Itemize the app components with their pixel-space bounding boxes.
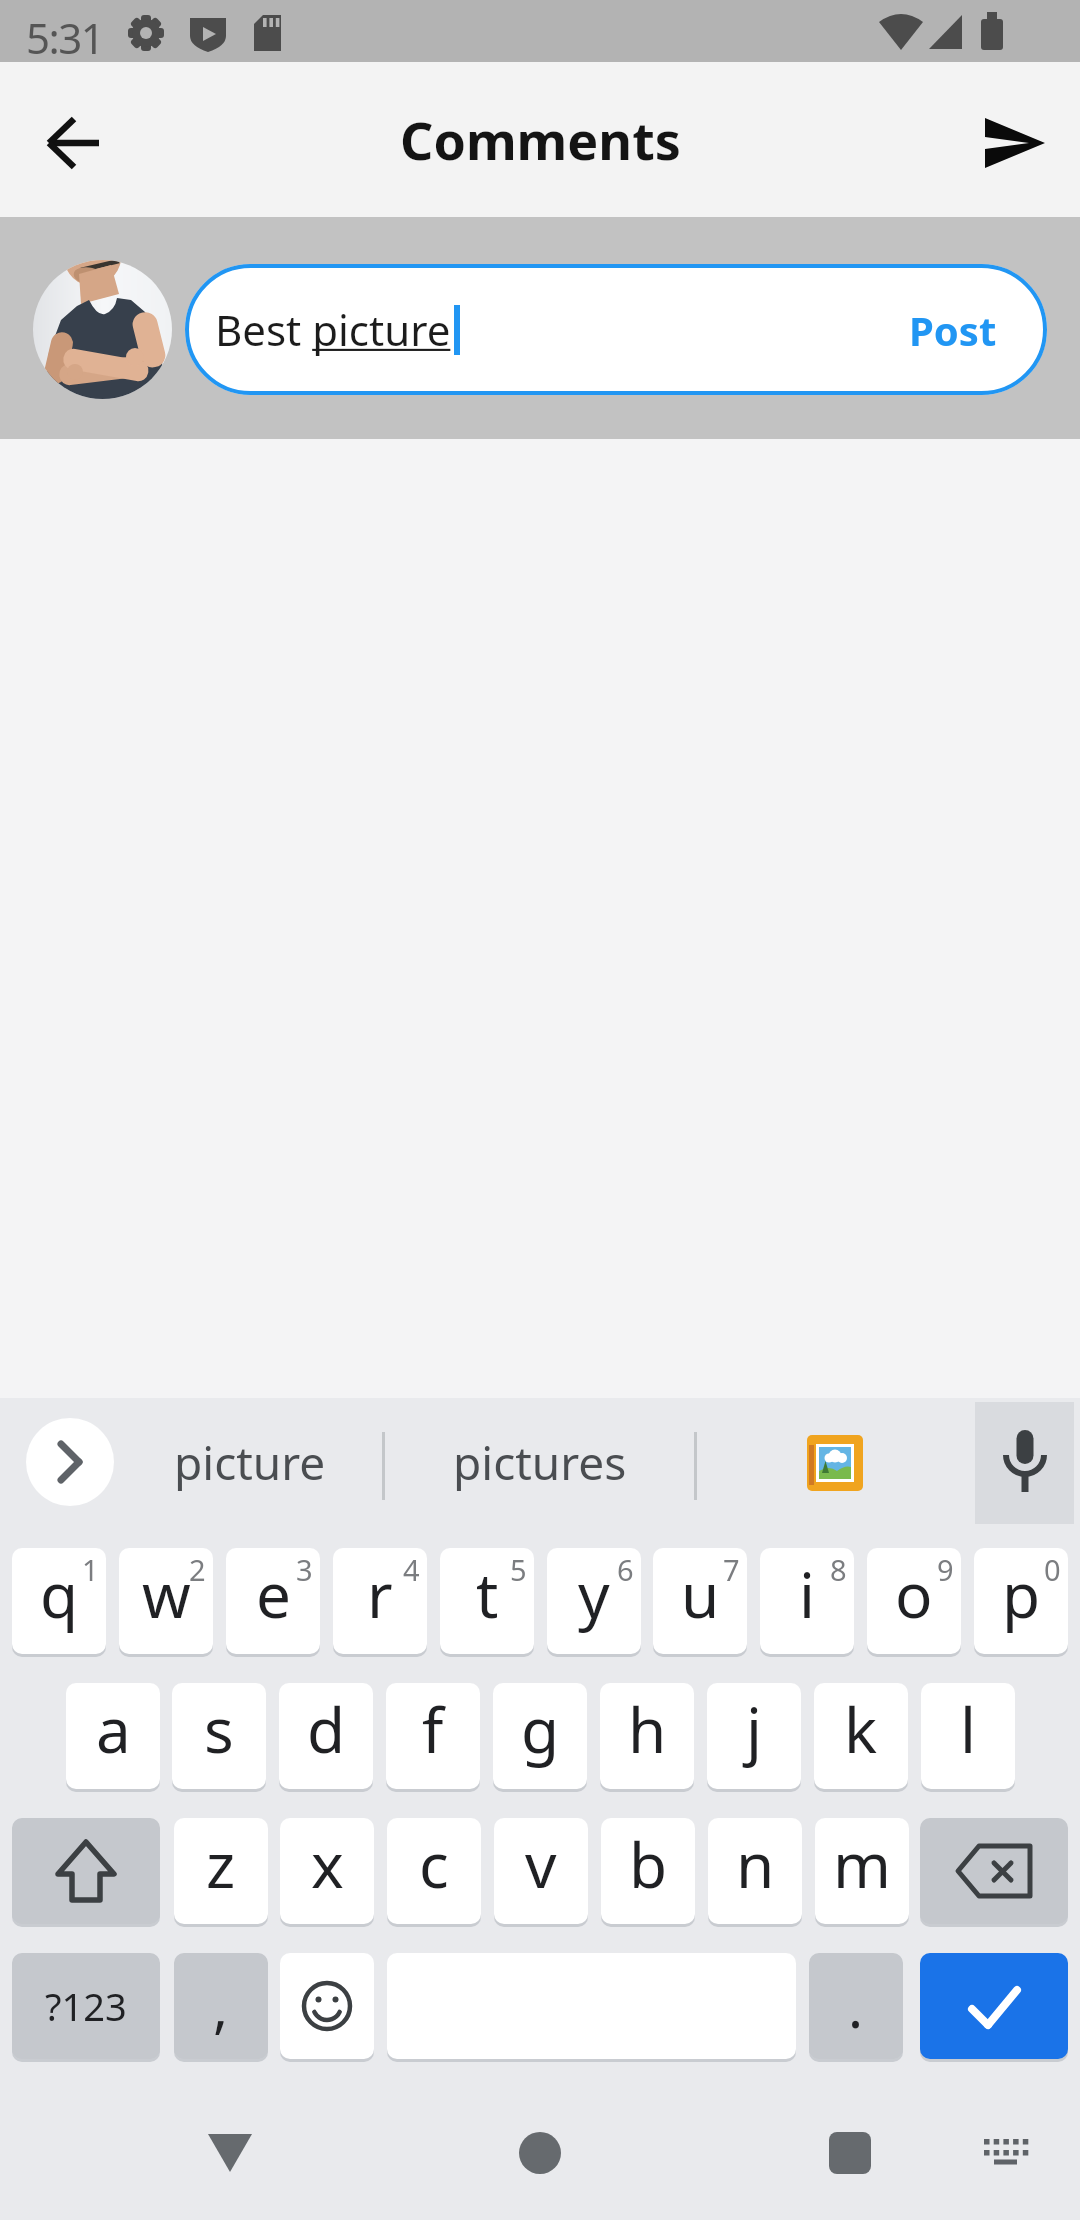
staticText: g [521, 1687, 560, 1771]
staticText: ?123 [45, 1980, 127, 2032]
staticText: j [746, 1687, 762, 1771]
button[interactable]: picture [130, 1400, 370, 1524]
button[interactable] [26, 1418, 114, 1506]
button[interactable]: n [708, 1818, 802, 1924]
button[interactable] [280, 1953, 374, 2059]
staticText: p [1002, 1552, 1041, 1636]
staticText: , [213, 1968, 229, 2044]
staticText: Comments [400, 104, 681, 175]
button[interactable] [180, 2105, 280, 2200]
button[interactable] [920, 1953, 1068, 2059]
button[interactable]: a [66, 1683, 160, 1789]
button[interactable]: i [760, 1548, 854, 1654]
staticText: k [844, 1687, 878, 1771]
staticText: y [578, 1552, 610, 1636]
button[interactable]: o [867, 1548, 961, 1654]
button[interactable] [33, 260, 172, 399]
staticText: r [367, 1552, 393, 1636]
staticText: z [206, 1822, 236, 1906]
staticText: . [848, 1968, 864, 2044]
staticText: v [525, 1822, 557, 1906]
staticText: 1 [82, 1550, 99, 1589]
staticText: 9 [937, 1550, 954, 1589]
button[interactable]: f [386, 1683, 480, 1789]
staticText: q [40, 1552, 79, 1636]
staticText: l [960, 1687, 976, 1771]
staticText: e [256, 1552, 291, 1636]
button[interactable]: Post [909, 303, 997, 357]
button[interactable]: y [547, 1548, 641, 1654]
button[interactable] [966, 2110, 1046, 2194]
button[interactable]: r [333, 1548, 427, 1654]
staticText: 3 [296, 1550, 313, 1589]
button[interactable]: k [814, 1683, 908, 1789]
staticText: h [628, 1687, 667, 1771]
button[interactable] [12, 1818, 160, 1924]
button[interactable]: v [494, 1818, 588, 1924]
button[interactable] [960, 105, 1070, 181]
staticText: n [736, 1822, 775, 1906]
button[interactable] [800, 2105, 900, 2200]
button[interactable]: pictures [400, 1400, 680, 1524]
button[interactable]: c [387, 1818, 481, 1924]
button[interactable] [920, 1818, 1068, 1924]
button[interactable] [490, 2105, 590, 2200]
staticText: c [419, 1822, 449, 1906]
button[interactable]: , [174, 1953, 268, 2059]
button[interactable]: j [707, 1683, 801, 1789]
staticText: 0 [1044, 1550, 1061, 1589]
staticText: i [799, 1552, 815, 1636]
button[interactable]: Best picture [185, 264, 1047, 395]
staticText: 6 [617, 1550, 634, 1589]
button[interactable]: h [600, 1683, 694, 1789]
button[interactable]: m [815, 1818, 909, 1924]
staticText: t [476, 1552, 499, 1636]
staticText: Best picture [215, 301, 451, 358]
staticText: s [204, 1687, 234, 1771]
button[interactable]: u [653, 1548, 747, 1654]
staticText: x [311, 1822, 344, 1906]
staticText: u [681, 1552, 720, 1636]
button[interactable]: w [119, 1548, 213, 1654]
button[interactable]: . [809, 1953, 903, 2059]
staticText: w [142, 1552, 191, 1636]
button[interactable] [975, 1402, 1074, 1524]
staticText: o [895, 1552, 933, 1636]
button[interactable]: b [601, 1818, 695, 1924]
staticText: pictures [453, 1431, 627, 1494]
staticText: a [96, 1687, 131, 1771]
button[interactable]: e [226, 1548, 320, 1654]
staticText: m [833, 1822, 891, 1906]
button[interactable]: ?123 [12, 1953, 160, 2059]
staticText: 7 [723, 1550, 740, 1589]
staticText: 4 [403, 1550, 420, 1589]
staticText: 8 [830, 1550, 847, 1589]
button[interactable]: x [280, 1818, 374, 1924]
staticText: picture [174, 1431, 326, 1494]
staticText: d [307, 1687, 346, 1771]
staticText: 5:31 [26, 9, 104, 66]
staticText: 2 [189, 1550, 206, 1589]
staticText: b [629, 1822, 668, 1906]
button[interactable]: d [279, 1683, 373, 1789]
button[interactable]: z [174, 1818, 268, 1924]
button[interactable] [30, 105, 120, 181]
staticText: 5 [510, 1550, 527, 1589]
staticText: f [422, 1687, 444, 1771]
button[interactable] [807, 1435, 863, 1491]
button[interactable]: q [12, 1548, 106, 1654]
button[interactable]: t [440, 1548, 534, 1654]
button[interactable]: p [974, 1548, 1068, 1654]
button[interactable]: g [493, 1683, 587, 1789]
button[interactable]: s [172, 1683, 266, 1789]
staticText: Post [909, 303, 997, 357]
button[interactable]: l [921, 1683, 1015, 1789]
